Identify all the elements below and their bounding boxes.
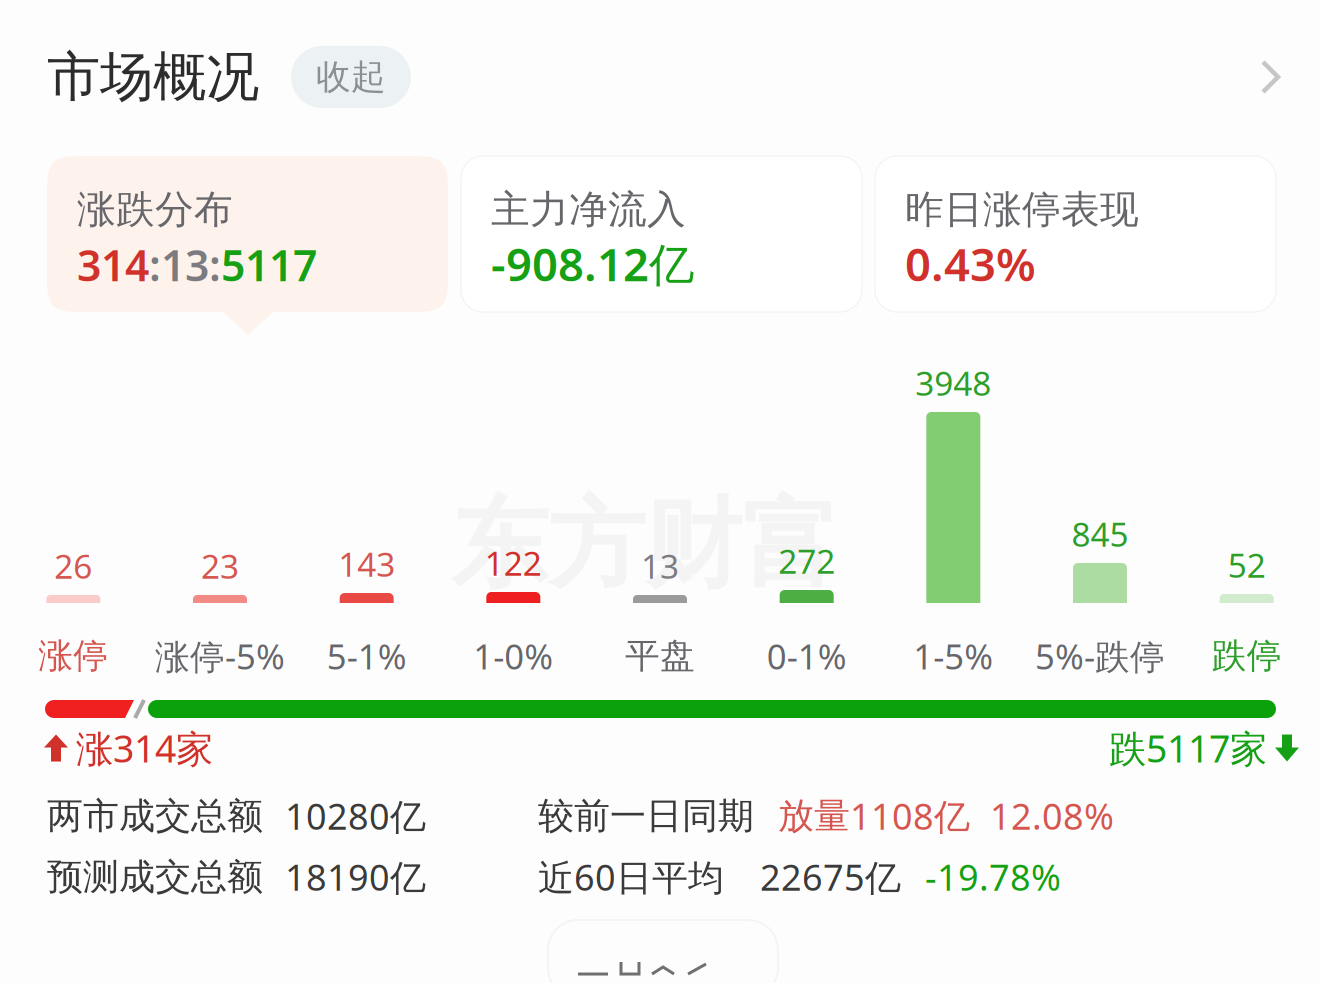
- staticText: 13: [641, 544, 679, 588]
- button[interactable]: 272: [733, 353, 880, 677]
- button[interactable]: 143: [293, 353, 440, 677]
- staticText: 1108亿: [850, 792, 970, 840]
- staticText: 143: [338, 542, 395, 586]
- button[interactable]: 13: [587, 353, 733, 677]
- staticText: 预测成交总额: [47, 855, 263, 899]
- staticText: 1-0%: [473, 633, 553, 679]
- staticText: 22675亿: [760, 853, 901, 901]
- staticText: 5117: [221, 236, 317, 293]
- staticText: 0-1%: [767, 633, 847, 679]
- button[interactable]: 收起: [291, 46, 411, 108]
- staticText: 845: [1071, 512, 1128, 556]
- staticText: 23: [201, 544, 239, 588]
- staticText: 跌5117家: [1109, 723, 1267, 773]
- staticText: 涨跌分布: [77, 186, 233, 233]
- staticText: 收起: [316, 56, 386, 98]
- staticText: 昨日涨停表现: [905, 186, 1139, 233]
- staticText: 跌停: [1212, 635, 1282, 677]
- staticText: 较前一日同期: [538, 794, 754, 838]
- staticText: 13: [161, 236, 209, 293]
- staticText: 26: [54, 544, 92, 588]
- button[interactable]: 23: [147, 353, 293, 677]
- staticText: 涨停: [38, 635, 108, 677]
- staticText: 平盘: [625, 635, 695, 677]
- staticText: 5%-跌停: [1035, 633, 1165, 679]
- button[interactable]: 昨日涨停表现: [875, 156, 1276, 312]
- staticText: 5-1%: [327, 633, 407, 679]
- staticText: -19.78%: [925, 853, 1061, 901]
- staticText: 122: [485, 541, 542, 585]
- staticText: :: [209, 236, 221, 293]
- staticText: 放量: [778, 794, 850, 838]
- button[interactable]: 845: [1027, 353, 1173, 677]
- button[interactable]: 52: [1173, 353, 1320, 677]
- staticText: 涨314家: [76, 723, 213, 773]
- staticText: 两市成交总额: [47, 794, 263, 838]
- button[interactable]: 122: [440, 353, 587, 677]
- staticText: 涨停-5%: [155, 633, 285, 679]
- button[interactable]: 涨跌分布: [47, 156, 448, 312]
- button[interactable]: 主力净流入: [461, 156, 862, 312]
- staticText: 314: [77, 236, 149, 293]
- staticText: 0.43%: [905, 233, 1036, 294]
- button[interactable]: 3948: [880, 353, 1027, 677]
- staticText: 主力净流入: [491, 186, 686, 233]
- button[interactable]: 26: [0, 353, 147, 677]
- button[interactable]: 展开更多: [1244, 43, 1297, 111]
- staticText: 3948: [915, 361, 991, 405]
- staticText: 18190亿: [285, 853, 426, 901]
- staticText: -908.12亿: [491, 233, 694, 294]
- staticText: 近60日平均: [538, 853, 724, 901]
- staticText: 10280亿: [285, 792, 426, 840]
- staticText: 12.08%: [990, 792, 1114, 840]
- staticText: 272: [778, 539, 835, 583]
- staticText: 52: [1228, 543, 1266, 587]
- staticText: 东方财富: [451, 485, 839, 605]
- staticText: :: [149, 236, 161, 293]
- staticText: 1-5%: [913, 633, 993, 679]
- staticText: 市场概况: [47, 44, 259, 110]
